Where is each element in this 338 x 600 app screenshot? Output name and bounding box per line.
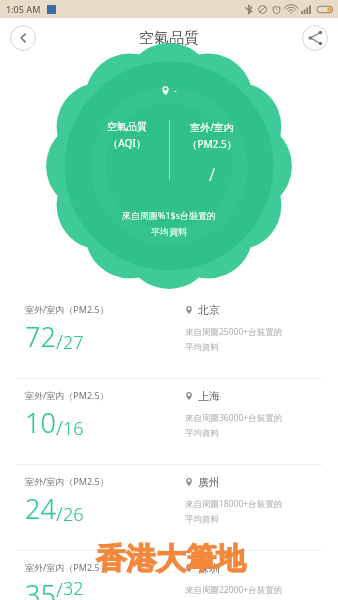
staticText: 35 [25, 576, 56, 600]
button[interactable]: Back [10, 25, 36, 51]
staticText: 32 [63, 576, 84, 600]
staticText: （AQI） [108, 136, 146, 150]
staticText: - [174, 85, 177, 96]
staticText: 空氣品質 [139, 29, 199, 48]
staticText: 24 [25, 490, 56, 527]
staticText: 室外/室内（PM2.5） [25, 389, 109, 401]
staticText: 廣州 [198, 475, 220, 489]
staticText: 室外/室内（PM2.5） [25, 303, 109, 315]
staticText: / [56, 328, 63, 355]
staticText: 上海 [198, 389, 220, 403]
staticText: 室外/室内 [190, 120, 234, 134]
staticText: 北京 [198, 303, 220, 317]
staticText: 平均資料 [185, 514, 219, 525]
button[interactable]: 室外/室内（PM2.5） [0, 293, 338, 378]
staticText: 16 [63, 416, 84, 441]
staticText: 來自周圍22000+台裝置的 [185, 584, 283, 596]
staticText: 香港大筆地 [96, 540, 246, 578]
staticText: / [56, 500, 63, 527]
staticText: 室外/室内（PM2.5） [25, 561, 109, 573]
staticText: / [56, 576, 63, 600]
button[interactable]: 室外/室内（PM2.5） [0, 465, 338, 550]
staticText: 平均資料 [0, 226, 338, 237]
button[interactable]: 室外/室内（PM2.5） [0, 379, 338, 464]
button[interactable]: Share [302, 25, 328, 51]
staticText: 平均資料 [185, 342, 219, 353]
staticText: 深圳 [198, 561, 220, 575]
staticText: 空氣品質 [107, 120, 147, 133]
staticText: 室外/室内（PM2.5） [25, 475, 109, 487]
staticText: 來自周圍%1$s台裝置的 [0, 209, 338, 221]
staticText: / [209, 162, 216, 187]
staticText: 27 [63, 330, 84, 355]
staticText: 來自周圍36000+台裝置的 [185, 412, 283, 424]
button[interactable]: 室外/室内（PM2.5） [0, 551, 338, 600]
staticText: 1:05 AM [6, 3, 41, 15]
staticText: 來自周圍25000+台裝置的 [185, 326, 283, 338]
staticText: 平均資料 [185, 428, 219, 439]
staticText: 10 [25, 404, 56, 441]
staticText: （PM2.5） [187, 137, 237, 151]
staticText: / [56, 414, 63, 441]
staticText: 來自周圍18000+台裝置的 [185, 498, 283, 510]
staticText: 26 [63, 502, 84, 527]
staticText: 72 [25, 318, 56, 355]
